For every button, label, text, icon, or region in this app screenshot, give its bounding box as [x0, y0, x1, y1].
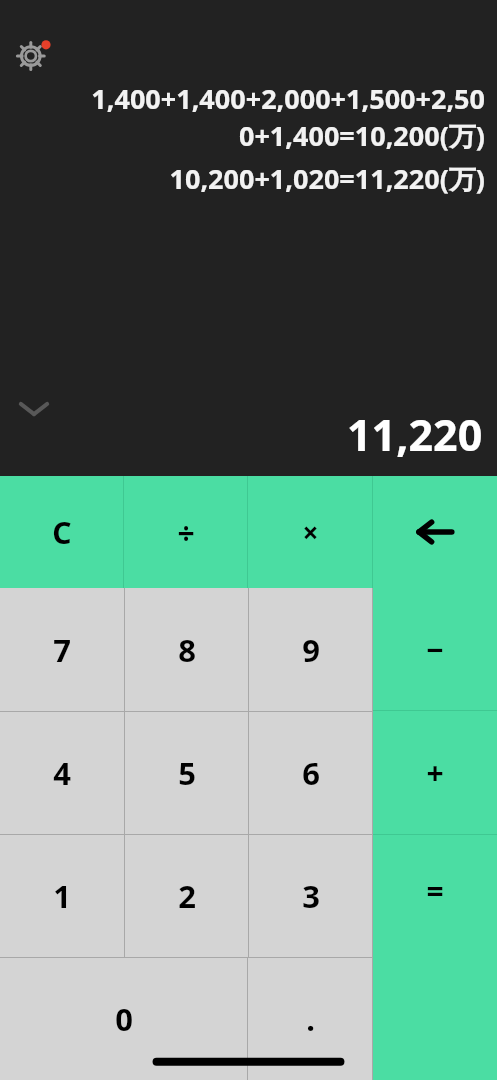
- button[interactable]: ×: [248, 476, 372, 588]
- button[interactable]: 9: [249, 588, 372, 711]
- button[interactable]: 0: [0, 958, 247, 1080]
- button[interactable]: 4: [0, 712, 124, 834]
- staticText: C: [52, 512, 72, 553]
- button[interactable]: Backspace: [373, 476, 497, 588]
- button[interactable]: 5: [125, 712, 248, 834]
- staticText: 8: [178, 629, 196, 671]
- staticText: .: [306, 998, 315, 1040]
- staticText: 11,220: [347, 405, 483, 464]
- staticText: 7: [53, 629, 71, 671]
- staticText: 0+1,400=10,200(万): [12, 117, 485, 154]
- button[interactable]: C: [0, 476, 123, 588]
- button[interactable]: Collapse history: [12, 394, 56, 424]
- staticText: 2: [178, 875, 196, 917]
- staticText: 6: [302, 752, 320, 794]
- button[interactable]: 7: [0, 588, 124, 711]
- button[interactable]: .: [248, 958, 372, 1080]
- staticText: =: [426, 870, 444, 911]
- button[interactable]: ÷: [124, 476, 247, 588]
- staticText: 1: [53, 875, 71, 917]
- staticText: 3: [302, 875, 320, 917]
- staticText: 1,400+1,400+2,000+1,500+2,50: [12, 80, 485, 117]
- staticText: 0: [115, 998, 133, 1040]
- button[interactable]: 6: [249, 712, 372, 834]
- button[interactable]: 1: [0, 835, 124, 957]
- button[interactable]: 2: [125, 835, 248, 957]
- staticText: ×: [302, 513, 319, 551]
- button[interactable]: 3: [249, 835, 372, 957]
- button[interactable]: +: [373, 711, 497, 834]
- button[interactable]: =: [373, 835, 497, 1080]
- button[interactable]: Settings: [14, 34, 54, 74]
- staticText: 10,200+1,020=11,220(万): [12, 160, 485, 197]
- staticText: 9: [302, 629, 320, 671]
- staticText: −: [426, 629, 444, 670]
- staticText: 4: [53, 752, 71, 794]
- staticText: +: [426, 752, 444, 793]
- button[interactable]: −: [373, 588, 497, 710]
- staticText: 5: [178, 752, 196, 794]
- staticText: ÷: [177, 512, 195, 553]
- button[interactable]: 8: [125, 588, 248, 711]
